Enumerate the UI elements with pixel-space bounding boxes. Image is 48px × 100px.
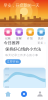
staticText: 早安，开启新的一天 xyxy=(3,3,39,8)
button[interactable]: 更多 › xyxy=(37,41,45,45)
staticText: 更多 › xyxy=(37,41,45,45)
button[interactable]: 记账 xyxy=(3,28,14,40)
staticText: 00 xyxy=(5,67,9,70)
staticText: 00 xyxy=(5,73,9,76)
staticText: 发现更多 xyxy=(4,90,20,95)
staticText: 计划 xyxy=(27,37,33,40)
button[interactable]: 提醒 xyxy=(14,28,25,40)
staticText: 立即开始 xyxy=(7,60,19,63)
staticText: 保持好心情的小方法 xyxy=(5,47,41,52)
button[interactable]: Add xyxy=(16,88,32,100)
staticText: 提醒 xyxy=(16,37,22,40)
button[interactable]: Profile xyxy=(32,88,48,100)
staticText: 统计 xyxy=(38,37,44,40)
button[interactable]: 计划 xyxy=(25,28,36,40)
button[interactable]: 统计 xyxy=(36,28,47,40)
staticText: 每天记录三件开心的小事 xyxy=(5,53,38,57)
staticText: 今日推荐 xyxy=(4,40,20,45)
button[interactable]: Home xyxy=(0,88,16,100)
staticText: 00 xyxy=(5,85,9,89)
button[interactable]: Statistics chart xyxy=(4,68,46,89)
staticText: 00 xyxy=(5,79,9,82)
button[interactable]: 保持好心情的小方法 xyxy=(3,45,46,66)
staticText: 记账 xyxy=(5,37,11,40)
